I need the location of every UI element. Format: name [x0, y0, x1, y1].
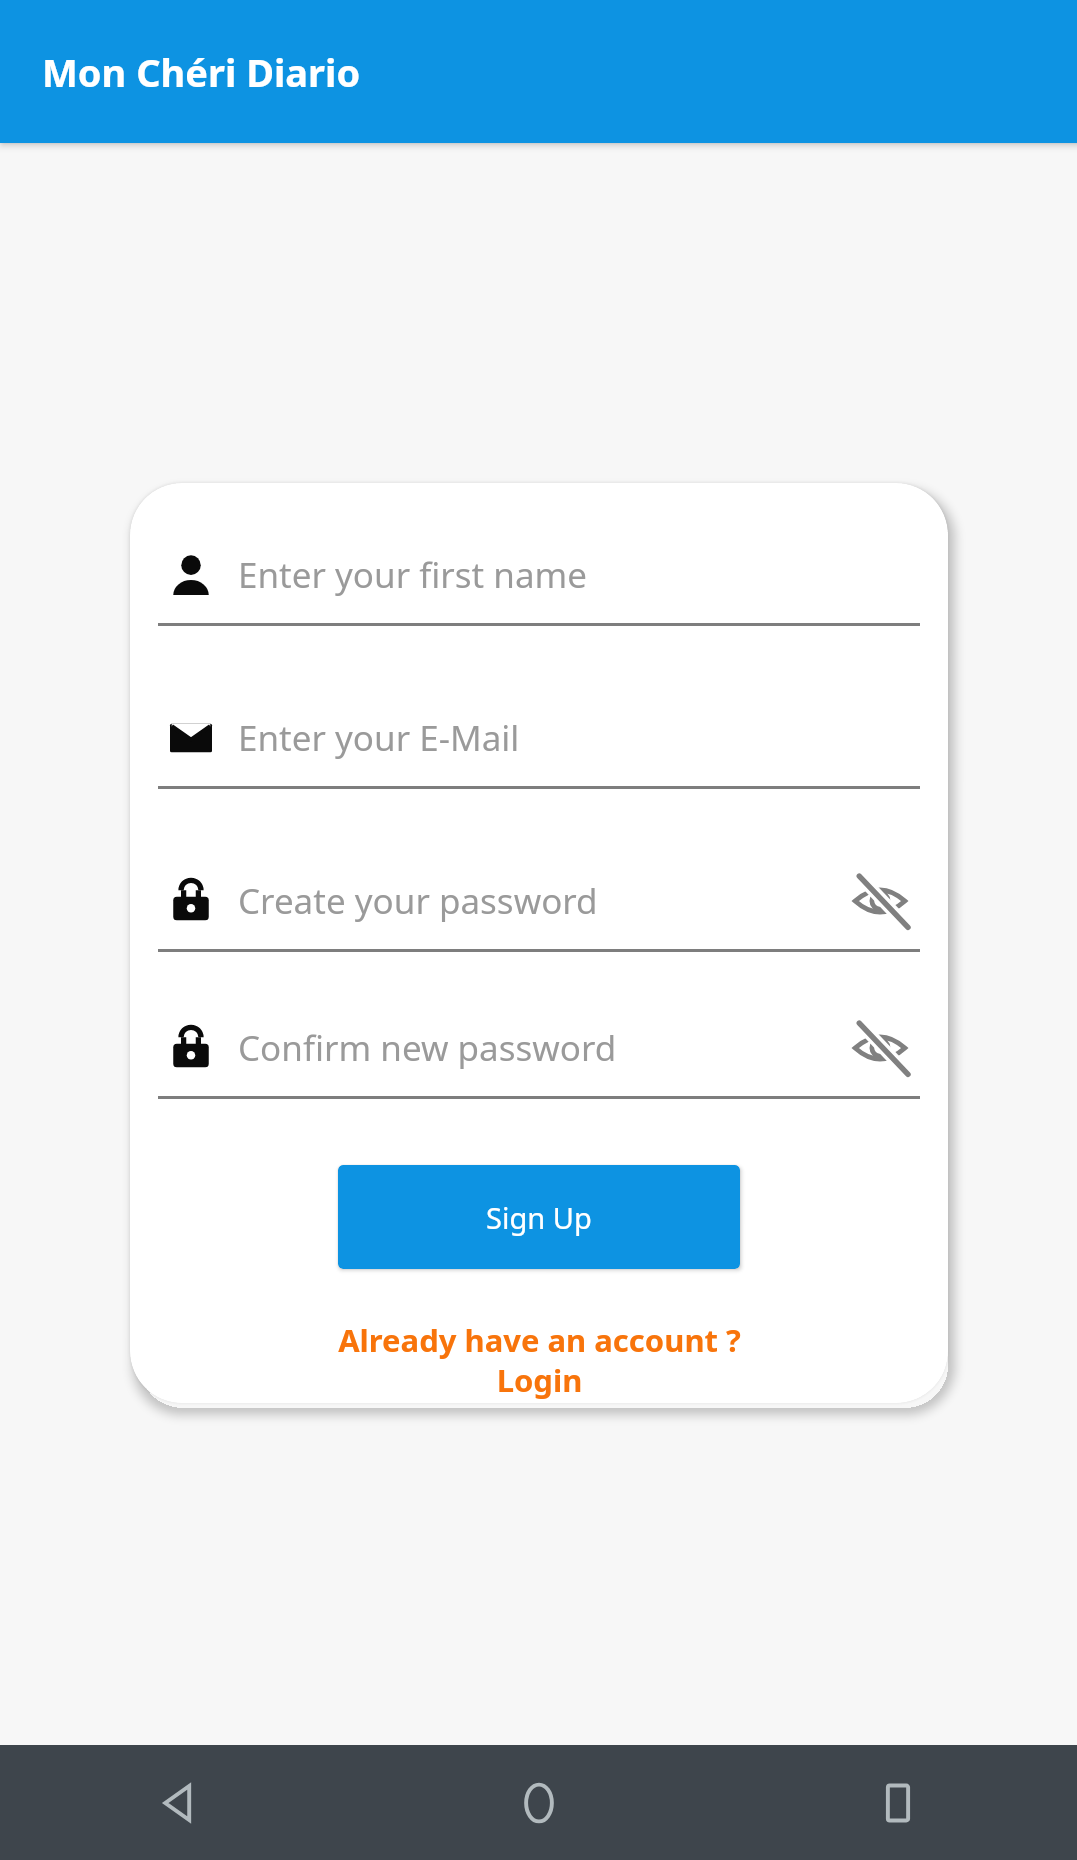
staticText: Enter your first name: [238, 551, 916, 599]
button[interactable]: Sign Up: [338, 1165, 740, 1269]
staticText: Create your password: [238, 877, 840, 925]
button[interactable]: Back: [0, 1745, 359, 1860]
other: Name: [158, 527, 224, 623]
staticText: Confirm new password: [238, 1024, 840, 1072]
button[interactable]: Email: [158, 690, 920, 786]
button[interactable]: Show password: [840, 861, 920, 941]
staticText: Already have an account ? Login: [338, 1319, 741, 1401]
button[interactable]: Already have an account ? Login: [158, 1319, 920, 1401]
staticText: Enter your E-Mail: [238, 714, 916, 762]
other: Confirm password: [158, 1000, 224, 1096]
button[interactable]: Recent apps: [718, 1745, 1077, 1860]
button[interactable]: Confirm password: [158, 1000, 920, 1096]
button[interactable]: Password: [158, 853, 920, 949]
button[interactable]: Home: [359, 1745, 718, 1860]
other: Email: [158, 690, 224, 786]
button[interactable]: Name: [158, 527, 920, 623]
staticText: Mon Chéri Diario: [42, 46, 361, 98]
staticText: Sign Up: [486, 1198, 592, 1237]
button[interactable]: Show password: [840, 1008, 920, 1088]
other: Password: [158, 853, 224, 949]
